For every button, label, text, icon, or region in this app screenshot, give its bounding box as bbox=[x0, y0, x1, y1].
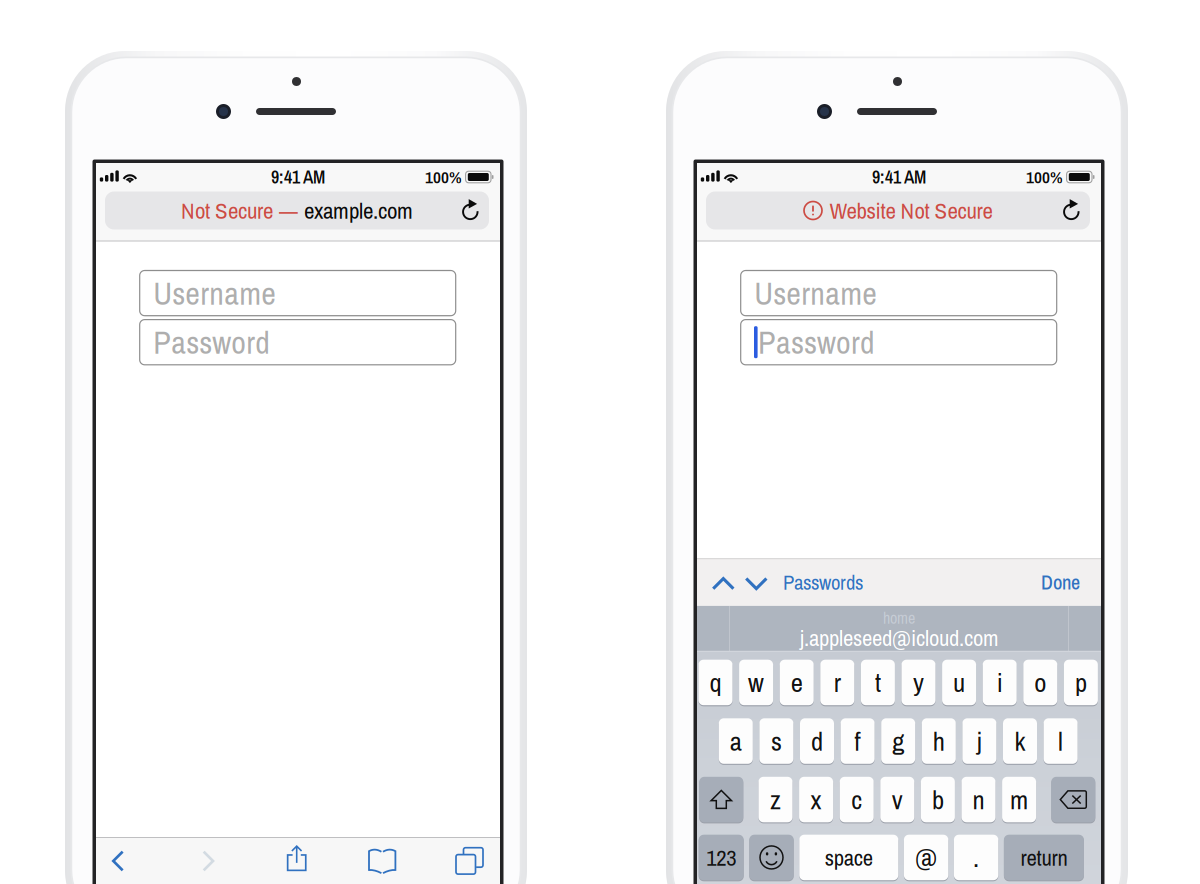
staticText: t bbox=[875, 664, 881, 700]
staticText: 100% bbox=[1026, 165, 1063, 189]
button[interactable]: Website Not Secure bbox=[697, 191, 1081, 229]
button[interactable]: c bbox=[840, 777, 874, 822]
staticText: j bbox=[977, 723, 982, 759]
button[interactable]: i bbox=[983, 660, 1017, 705]
button[interactable]: Shift bbox=[699, 777, 743, 822]
staticText: 9:41 AM bbox=[271, 165, 325, 189]
staticText: y bbox=[913, 664, 924, 700]
staticText: p bbox=[1075, 664, 1087, 700]
staticText: n bbox=[972, 782, 984, 817]
staticText: d bbox=[811, 723, 823, 759]
button[interactable]: Next field bbox=[737, 560, 775, 608]
staticText: return bbox=[1020, 842, 1067, 873]
staticText: q bbox=[709, 664, 721, 700]
button[interactable]: home bbox=[697, 606, 1101, 646]
staticText: 9:41 AM bbox=[872, 165, 926, 189]
button[interactable]: space bbox=[799, 835, 898, 880]
button[interactable]: u bbox=[942, 660, 976, 705]
button[interactable]: Emoji bbox=[749, 835, 794, 880]
button[interactable]: m bbox=[1002, 777, 1036, 822]
staticText: s bbox=[771, 723, 782, 759]
button[interactable]: l bbox=[1044, 718, 1078, 764]
button[interactable]: Delete bbox=[1051, 777, 1095, 822]
button[interactable]: . bbox=[954, 835, 998, 880]
staticText: . bbox=[973, 839, 979, 875]
button[interactable]: n bbox=[961, 777, 995, 822]
staticText: z bbox=[770, 782, 781, 817]
button[interactable]: b bbox=[921, 777, 955, 822]
button[interactable]: s bbox=[759, 718, 793, 764]
staticText: h bbox=[933, 723, 945, 759]
staticText: Password bbox=[758, 321, 875, 364]
staticText: j.appleseed@icloud.com bbox=[800, 623, 998, 653]
staticText: 123 bbox=[706, 842, 736, 873]
button[interactable]: v bbox=[880, 777, 914, 822]
staticText: space bbox=[825, 842, 873, 873]
staticText: r bbox=[834, 664, 841, 700]
staticText: Username bbox=[754, 271, 877, 315]
button[interactable]: h bbox=[922, 718, 956, 764]
staticText: home bbox=[883, 607, 915, 629]
button[interactable]: t bbox=[861, 660, 895, 705]
button[interactable]: Tabs bbox=[437, 835, 495, 881]
button[interactable]: e bbox=[780, 660, 814, 705]
staticText: x bbox=[811, 782, 822, 817]
staticText: example.com bbox=[304, 195, 413, 226]
staticText: Password bbox=[153, 321, 270, 364]
button[interactable]: Share bbox=[267, 835, 325, 881]
staticText: 100% bbox=[425, 165, 462, 189]
staticText: k bbox=[1014, 723, 1025, 759]
button[interactable]: Previous field bbox=[704, 560, 742, 608]
staticText: e bbox=[791, 664, 803, 700]
button[interactable]: Not Secure bbox=[96, 191, 480, 229]
button[interactable]: g bbox=[881, 718, 915, 764]
staticText: b bbox=[932, 782, 944, 817]
staticText: c bbox=[851, 782, 862, 817]
button[interactable]: k bbox=[1003, 718, 1037, 764]
staticText: g bbox=[892, 723, 904, 759]
button[interactable]: y bbox=[901, 660, 935, 705]
staticText: Done bbox=[1041, 569, 1080, 596]
staticText: w bbox=[748, 664, 764, 700]
button[interactable]: x bbox=[799, 777, 833, 822]
button[interactable]: f bbox=[841, 718, 875, 764]
button[interactable]: @ bbox=[904, 835, 948, 880]
button[interactable]: return bbox=[1004, 835, 1084, 880]
button[interactable]: o bbox=[1023, 660, 1057, 705]
staticText: — bbox=[279, 195, 298, 226]
button[interactable]: Back bbox=[88, 838, 146, 884]
button[interactable]: 123 bbox=[699, 835, 744, 880]
button[interactable]: Done bbox=[1000, 558, 1080, 606]
button[interactable]: a bbox=[719, 718, 753, 764]
button[interactable]: j bbox=[962, 718, 996, 764]
button[interactable]: q bbox=[698, 660, 732, 705]
staticText: o bbox=[1034, 664, 1046, 700]
button[interactable]: Forward bbox=[180, 838, 238, 884]
staticText: u bbox=[953, 664, 965, 700]
staticText: Website Not Secure bbox=[829, 195, 992, 226]
button[interactable]: w bbox=[739, 660, 773, 705]
staticText: v bbox=[892, 782, 903, 817]
staticText: a bbox=[730, 723, 742, 759]
staticText: f bbox=[855, 723, 861, 759]
staticText: m bbox=[1010, 782, 1028, 817]
staticText: @ bbox=[915, 839, 937, 875]
button[interactable]: z bbox=[758, 777, 792, 822]
staticText: i bbox=[997, 664, 1003, 700]
button[interactable]: r bbox=[820, 660, 854, 705]
button[interactable]: p bbox=[1064, 660, 1098, 705]
button[interactable]: Bookmarks bbox=[353, 838, 411, 884]
staticText: l bbox=[1058, 723, 1063, 759]
staticText: Not Secure bbox=[181, 195, 273, 226]
button[interactable]: Passwords bbox=[783, 558, 893, 606]
staticText: Passwords bbox=[783, 568, 863, 596]
staticText: Username bbox=[153, 271, 276, 315]
button[interactable]: d bbox=[800, 718, 834, 764]
